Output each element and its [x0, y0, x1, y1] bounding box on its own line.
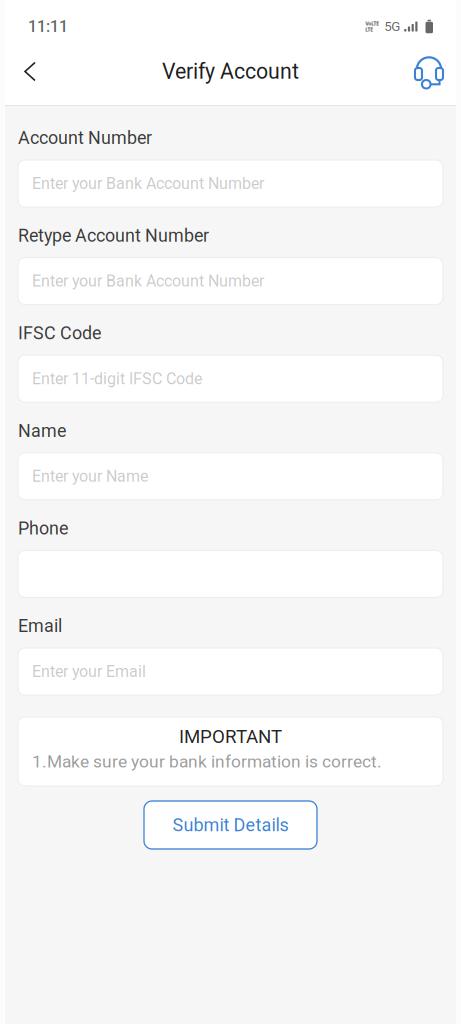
staticText: Name	[18, 420, 66, 441]
staticText: LTE	[365, 26, 373, 33]
staticText: Enter your Bank Account Number	[32, 272, 264, 290]
staticText: Enter 11-digit IFSC Code	[32, 369, 202, 388]
staticText: IMPORTANT	[179, 726, 282, 747]
staticText: VoLTE	[365, 20, 379, 27]
staticText: Enter your Name	[32, 467, 148, 486]
button[interactable]: Customer support	[407, 42, 451, 100]
button[interactable]: Submit Details	[144, 801, 317, 849]
staticText: 1.Make sure your bank information is cor…	[32, 751, 382, 772]
staticText: Verify Account	[162, 59, 299, 84]
staticText: 11:11	[28, 17, 68, 36]
staticText: Phone	[18, 518, 68, 539]
button[interactable]: Account Number	[18, 160, 443, 207]
staticText: Retype Account Number	[18, 225, 209, 246]
button[interactable]: Name	[18, 453, 443, 500]
staticText: IFSC Code	[18, 323, 101, 344]
button[interactable]: IFSC Code	[18, 355, 443, 402]
staticText: Enter your Email	[32, 662, 146, 681]
staticText: Submit Details	[172, 814, 288, 836]
staticText: Email	[18, 615, 62, 636]
button[interactable]: Email	[18, 648, 443, 695]
staticText: Enter your Bank Account Number	[32, 174, 264, 193]
staticText: 5G	[384, 19, 400, 34]
staticText: Account Number	[18, 127, 152, 148]
button[interactable]: Retype Account Number	[18, 258, 443, 305]
button[interactable]: Back	[8, 42, 52, 100]
